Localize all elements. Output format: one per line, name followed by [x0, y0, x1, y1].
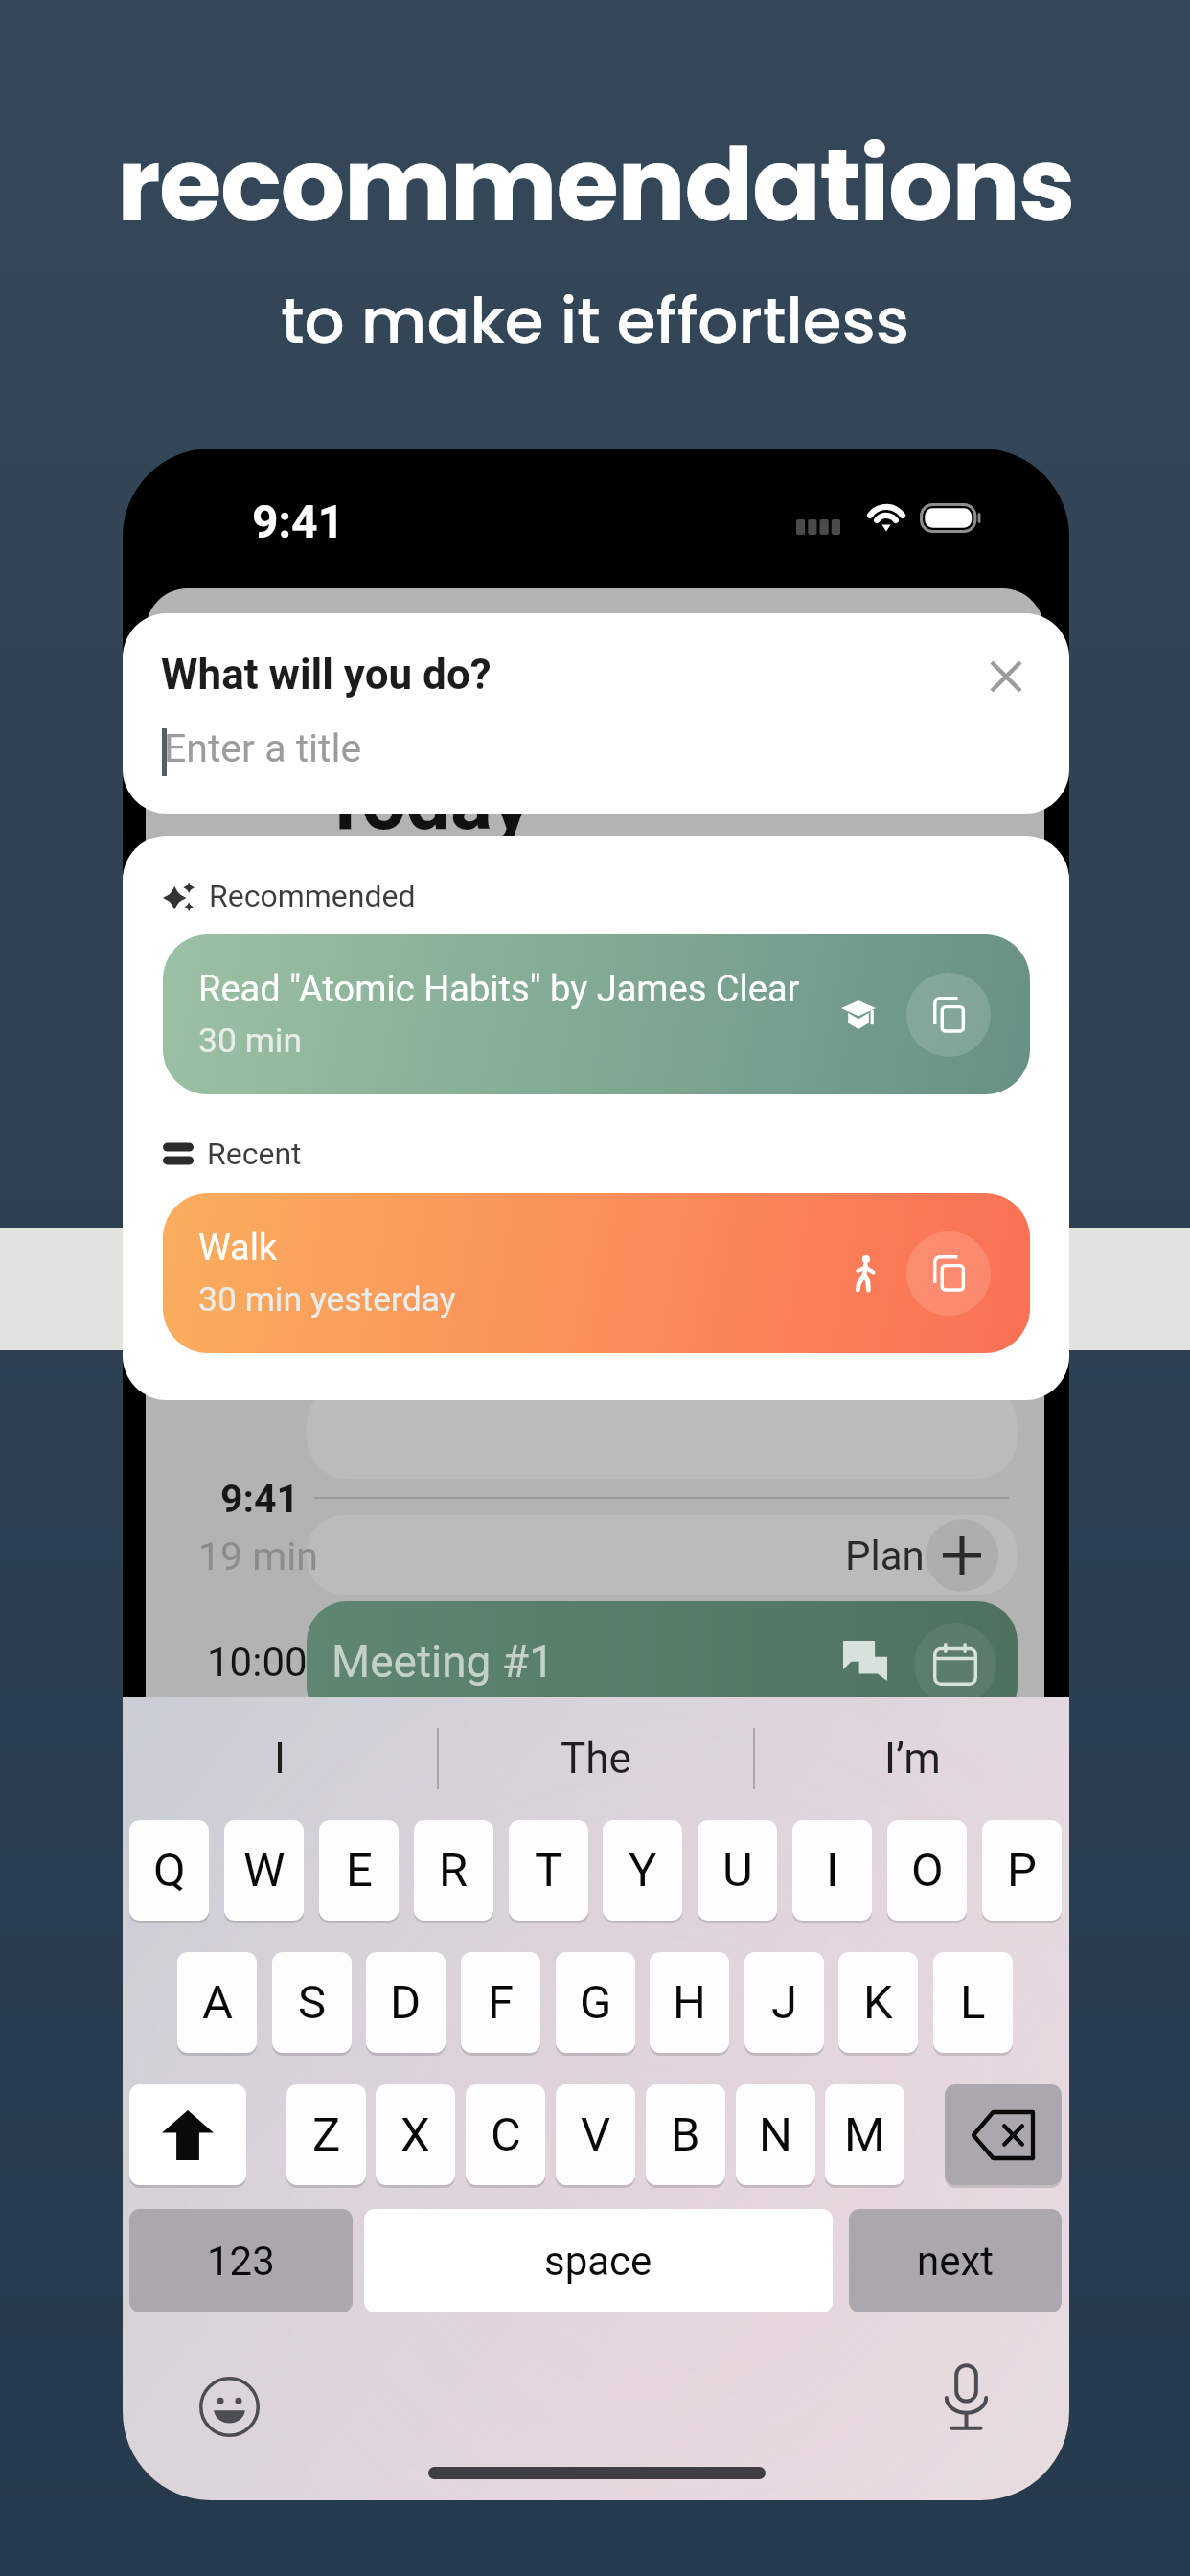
- staticText: I’m: [884, 1734, 941, 1783]
- button[interactable]: L: [933, 1952, 1013, 2053]
- staticText: R: [439, 1843, 469, 1897]
- button[interactable]: Emoji: [178, 2356, 280, 2457]
- staticText: Q: [153, 1843, 186, 1897]
- staticText: E: [346, 1843, 373, 1897]
- button[interactable]: W: [224, 1820, 304, 1920]
- staticText: Z: [312, 2107, 341, 2162]
- staticText: Recommended: [209, 878, 416, 914]
- button[interactable]: Shift: [129, 2084, 246, 2185]
- button[interactable]: I’m: [755, 1697, 1069, 1820]
- staticText: Today: [321, 756, 532, 848]
- staticText: T: [535, 1843, 563, 1897]
- staticText: K: [863, 1975, 893, 2030]
- staticText: B: [671, 2107, 700, 2162]
- button[interactable]: T: [509, 1820, 588, 1920]
- staticText: 9:41: [220, 1476, 300, 1522]
- button[interactable]: E: [319, 1820, 399, 1920]
- button[interactable]: Backspace: [945, 2084, 1062, 2185]
- button[interactable]: The: [439, 1697, 753, 1820]
- staticText: W: [243, 1843, 286, 1897]
- button[interactable]: Add plan: [926, 1519, 998, 1592]
- button[interactable]: Walk: [163, 1193, 1030, 1353]
- staticText: V: [581, 2107, 611, 2162]
- staticText: space: [544, 2238, 652, 2285]
- button[interactable]: Dictate: [915, 2347, 1017, 2449]
- staticText: S: [298, 1975, 327, 2030]
- staticText: F: [488, 1975, 515, 2030]
- staticText: L: [960, 1975, 986, 2030]
- staticText: 30 min: [198, 1021, 303, 1061]
- staticText: I: [274, 1734, 286, 1783]
- staticText: C: [491, 2107, 521, 2162]
- button[interactable]: I: [123, 1697, 437, 1820]
- staticText: 10:00: [207, 1639, 308, 1686]
- button[interactable]: C: [466, 2084, 545, 2185]
- button[interactable]: R: [414, 1820, 493, 1920]
- button[interactable]: Duplicate: [906, 1231, 991, 1316]
- staticText: next: [917, 2238, 995, 2285]
- staticText: recommendations: [117, 114, 1074, 256]
- button[interactable]: space: [364, 2209, 833, 2312]
- staticText: 123: [207, 2238, 275, 2285]
- button[interactable]: F: [461, 1952, 540, 2053]
- button[interactable]: I: [792, 1820, 872, 1920]
- button[interactable]: Y: [603, 1820, 682, 1920]
- staticText: M: [844, 2107, 885, 2162]
- staticText: Enter a title: [164, 725, 362, 771]
- staticText: The: [561, 1734, 631, 1783]
- staticText: X: [400, 2107, 430, 2162]
- staticText: 30 min yesterday: [198, 1279, 456, 1320]
- button[interactable]: J: [744, 1952, 824, 2053]
- button[interactable]: V: [556, 2084, 635, 2185]
- staticText: Read "Atomic Habits" by James Clear: [198, 968, 800, 1011]
- button[interactable]: 123: [129, 2209, 353, 2312]
- staticText: Walk: [198, 1227, 278, 1270]
- button[interactable]: H: [650, 1952, 729, 2053]
- button[interactable]: K: [838, 1952, 918, 2053]
- staticText: Recent: [207, 1136, 302, 1172]
- button[interactable]: N: [736, 2084, 815, 2185]
- staticText: P: [1007, 1843, 1037, 1897]
- button[interactable]: Close: [973, 644, 1039, 709]
- staticText: What will you do?: [161, 650, 492, 700]
- button[interactable]: G: [556, 1952, 635, 2053]
- button[interactable]: B: [646, 2084, 725, 2185]
- staticText: 19 min: [198, 1533, 318, 1579]
- staticText: G: [580, 1975, 612, 2030]
- staticText: O: [911, 1843, 944, 1897]
- button[interactable]: M: [825, 2084, 904, 2185]
- staticText: U: [722, 1843, 753, 1897]
- staticText: N: [759, 2107, 792, 2162]
- staticText: A: [202, 1975, 233, 2030]
- staticText: D: [390, 1975, 422, 2030]
- button[interactable]: U: [698, 1820, 777, 1920]
- staticText: I: [826, 1843, 839, 1897]
- staticText: H: [673, 1975, 706, 2030]
- button[interactable]: S: [272, 1952, 352, 2053]
- staticText: Plan: [845, 1532, 925, 1579]
- staticText: J: [771, 1975, 798, 2030]
- staticText: Y: [629, 1843, 657, 1897]
- button[interactable]: A: [177, 1952, 257, 2053]
- button[interactable]: Q: [129, 1820, 209, 1920]
- staticText: to make it effortless: [281, 277, 909, 365]
- button[interactable]: X: [376, 2084, 455, 2185]
- button[interactable]: Read "Atomic Habits" by James Clear: [163, 934, 1030, 1094]
- staticText: 9:41: [252, 494, 345, 548]
- button[interactable]: Duplicate: [906, 973, 991, 1057]
- button[interactable]: P: [982, 1820, 1062, 1920]
- button[interactable]: D: [366, 1952, 446, 2053]
- button[interactable]: O: [887, 1820, 967, 1920]
- button[interactable]: Z: [286, 2084, 366, 2185]
- staticText: Meeting #1: [332, 1636, 554, 1688]
- button[interactable]: next: [849, 2209, 1062, 2312]
